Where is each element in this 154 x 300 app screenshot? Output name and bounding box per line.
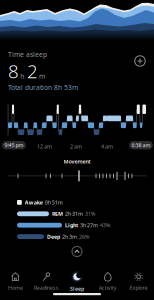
staticText: 9:45 pm (4, 142, 23, 149)
button[interactable]: Expand (71, 246, 82, 257)
button[interactable]: Home (0, 269, 31, 294)
staticText: Time asleep (8, 50, 47, 59)
staticText: 12 am (37, 143, 52, 150)
staticText: Light (65, 222, 78, 229)
staticText: 6:38 am (131, 142, 150, 149)
staticText: Activity (99, 284, 117, 291)
staticText: Explore (130, 284, 148, 291)
staticText: 3h 27m (80, 222, 98, 229)
staticText: 2h 3m (62, 233, 77, 240)
staticText: m (39, 72, 45, 81)
staticText: Readiness (34, 284, 59, 291)
staticText: REM (52, 210, 63, 217)
staticText: Movement (63, 158, 90, 165)
staticText: h (20, 72, 24, 81)
staticText: 43% (100, 222, 110, 229)
staticText: 2 am (70, 143, 82, 150)
staticText: 0h 51m (45, 199, 63, 206)
staticText: 4 am (101, 143, 113, 150)
staticText: 2 (27, 58, 38, 83)
button[interactable]: Readiness (31, 269, 62, 294)
button[interactable]: Add sleep (134, 55, 146, 67)
staticText: Home (8, 284, 23, 291)
staticText: Deep (47, 233, 60, 240)
staticText: 31% (85, 210, 95, 217)
staticText: Awake (25, 199, 43, 206)
staticText: 2h 31m (65, 210, 83, 217)
staticText: Total duration 8h 53m (8, 83, 78, 92)
button[interactable]: Sleep (62, 269, 92, 294)
button[interactable]: Explore (123, 269, 154, 294)
staticText: 26% (79, 233, 89, 240)
staticText: 8 (8, 58, 19, 83)
staticText: Sleep (70, 285, 84, 292)
button[interactable]: Activity (92, 269, 123, 294)
